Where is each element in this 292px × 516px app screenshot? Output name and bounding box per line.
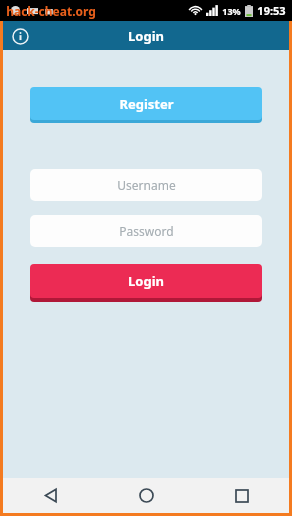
button[interactable]: Register — [30, 87, 262, 120]
staticText: 13% — [222, 5, 241, 17]
button[interactable]: Home — [99, 478, 194, 513]
staticText: Register — [119, 95, 174, 113]
staticText: 19:53 — [257, 3, 286, 18]
staticText: Password — [119, 223, 174, 239]
staticText: hack-cheat.org — [6, 3, 96, 19]
button[interactable]: Info — [8, 24, 32, 48]
button[interactable]: Recent apps — [194, 478, 289, 513]
button[interactable]: Password — [30, 215, 262, 247]
staticText: Login — [128, 272, 164, 290]
button[interactable]: Username — [30, 169, 262, 201]
button[interactable]: Login — [30, 264, 262, 298]
button[interactable]: Back — [3, 478, 99, 513]
staticText: Username — [117, 177, 176, 193]
staticText: Login — [128, 27, 164, 45]
